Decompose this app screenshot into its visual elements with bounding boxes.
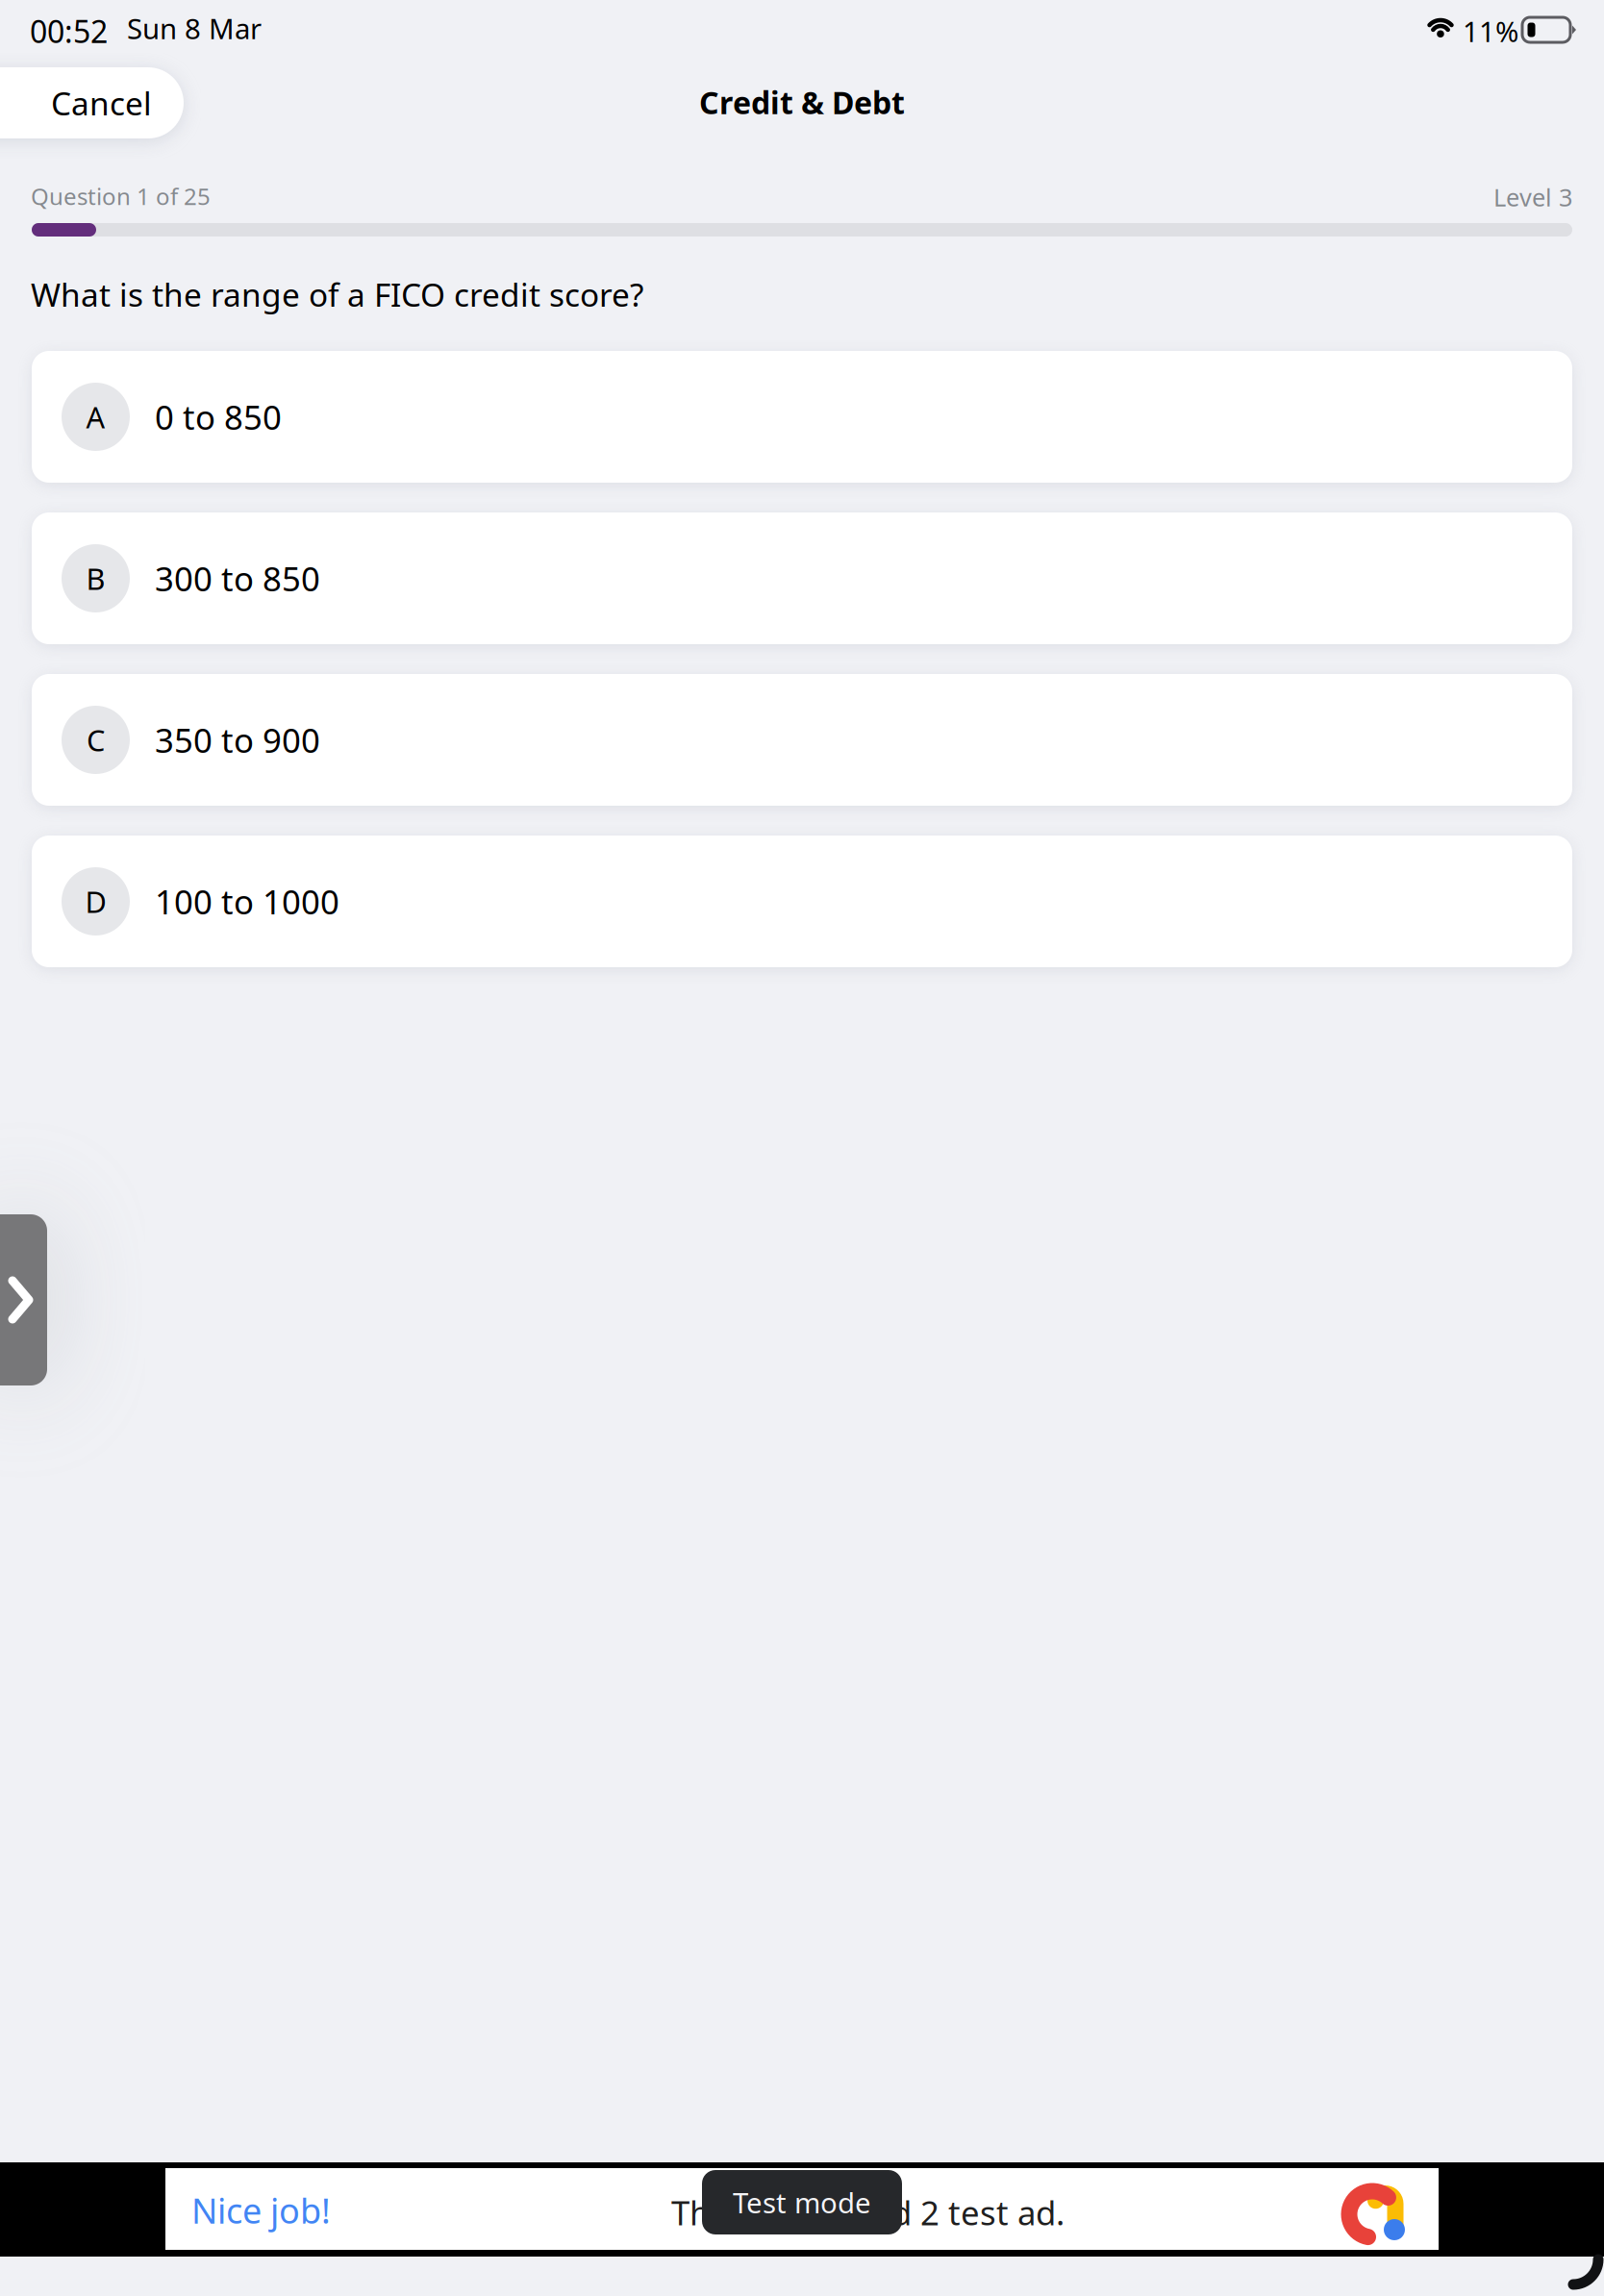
button[interactable]: D xyxy=(32,836,1572,967)
staticText: What is the range of a FICO credit score… xyxy=(31,273,643,316)
button[interactable]: A xyxy=(32,351,1572,483)
staticText: A xyxy=(86,397,105,436)
staticText: 350 to 900 xyxy=(155,718,320,762)
staticText: Test mode xyxy=(733,2184,871,2221)
button[interactable]: Nice job! xyxy=(0,2162,1604,2257)
staticText: Question 1 of 25 xyxy=(31,181,211,211)
staticText: Nice job! xyxy=(191,2187,331,2233)
staticText: Cancel xyxy=(51,82,152,124)
staticText: B xyxy=(86,559,105,598)
staticText: 300 to 850 xyxy=(155,556,320,600)
staticText: 0 to 850 xyxy=(155,395,282,439)
button[interactable]: Cancel xyxy=(0,67,184,138)
staticText: Level 3 xyxy=(1493,181,1572,213)
staticText: 00:52 xyxy=(30,11,108,51)
button[interactable]: B xyxy=(32,512,1572,644)
staticText: C xyxy=(87,720,105,759)
staticText: 100 to 1000 xyxy=(155,879,339,923)
button[interactable]: C xyxy=(32,674,1572,806)
staticText: Credit & Debt xyxy=(699,82,905,123)
staticText: This is a test ad 2 test ad. xyxy=(671,2190,1065,2234)
staticText: 11% xyxy=(1463,12,1518,50)
staticText: D xyxy=(85,882,106,921)
staticText: Sun 8 Mar xyxy=(127,10,262,47)
button[interactable]: Open navigation drawer xyxy=(0,1214,47,1385)
